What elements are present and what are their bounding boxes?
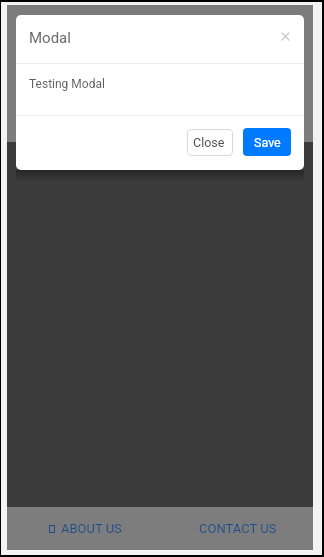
staticText: Close <box>193 135 225 150</box>
staticText: Save <box>254 135 281 150</box>
staticText: ABOUT US <box>61 521 122 536</box>
staticText: Modal <box>29 29 71 47</box>
staticText: Testing Modal <box>29 77 105 91</box>
button[interactable]: CONTACT US <box>160 507 313 550</box>
staticText: CONTACT US <box>199 521 277 536</box>
button[interactable]: ABOUT US <box>7 507 160 550</box>
button[interactable]: Close dialog <box>273 26 297 46</box>
button[interactable]: Close <box>187 129 233 156</box>
button[interactable]: Save <box>243 128 291 156</box>
